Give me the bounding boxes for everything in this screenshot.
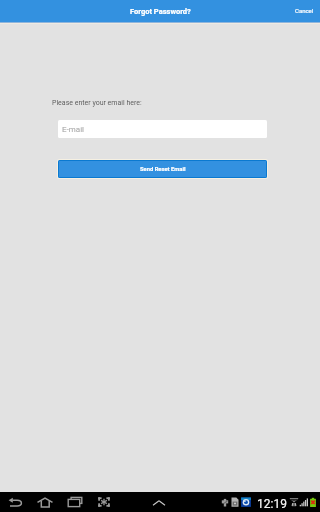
button[interactable]: Back (4, 492, 26, 512)
button[interactable]: Screenshot (93, 492, 115, 512)
staticText: Send Reset Email (140, 166, 186, 173)
staticText: 12:19 (257, 497, 287, 511)
staticText: Forgot Password? (130, 7, 191, 16)
button[interactable]: Notifications (148, 492, 170, 512)
button[interactable]: Cancel (287, 3, 320, 20)
button[interactable]: Send Reset Email (58, 160, 267, 178)
button[interactable]: Recent apps (64, 492, 86, 512)
staticText: E-mail (62, 125, 85, 134)
button[interactable]: E-mail (58, 120, 267, 138)
button[interactable]: Home (34, 492, 56, 512)
staticText: Cancel (295, 7, 314, 14)
staticText: Please enter your email here: (52, 99, 142, 107)
